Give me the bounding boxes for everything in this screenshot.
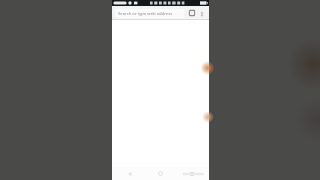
button[interactable]: Tabs xyxy=(187,8,197,18)
button[interactable]: More options xyxy=(197,9,206,18)
staticText: Search or type web address xyxy=(118,11,173,17)
button[interactable]: Back xyxy=(124,168,135,179)
button[interactable]: Recent apps xyxy=(186,168,197,179)
button[interactable]: Home xyxy=(155,168,166,179)
button[interactable]: Search or type web address xyxy=(115,9,184,18)
